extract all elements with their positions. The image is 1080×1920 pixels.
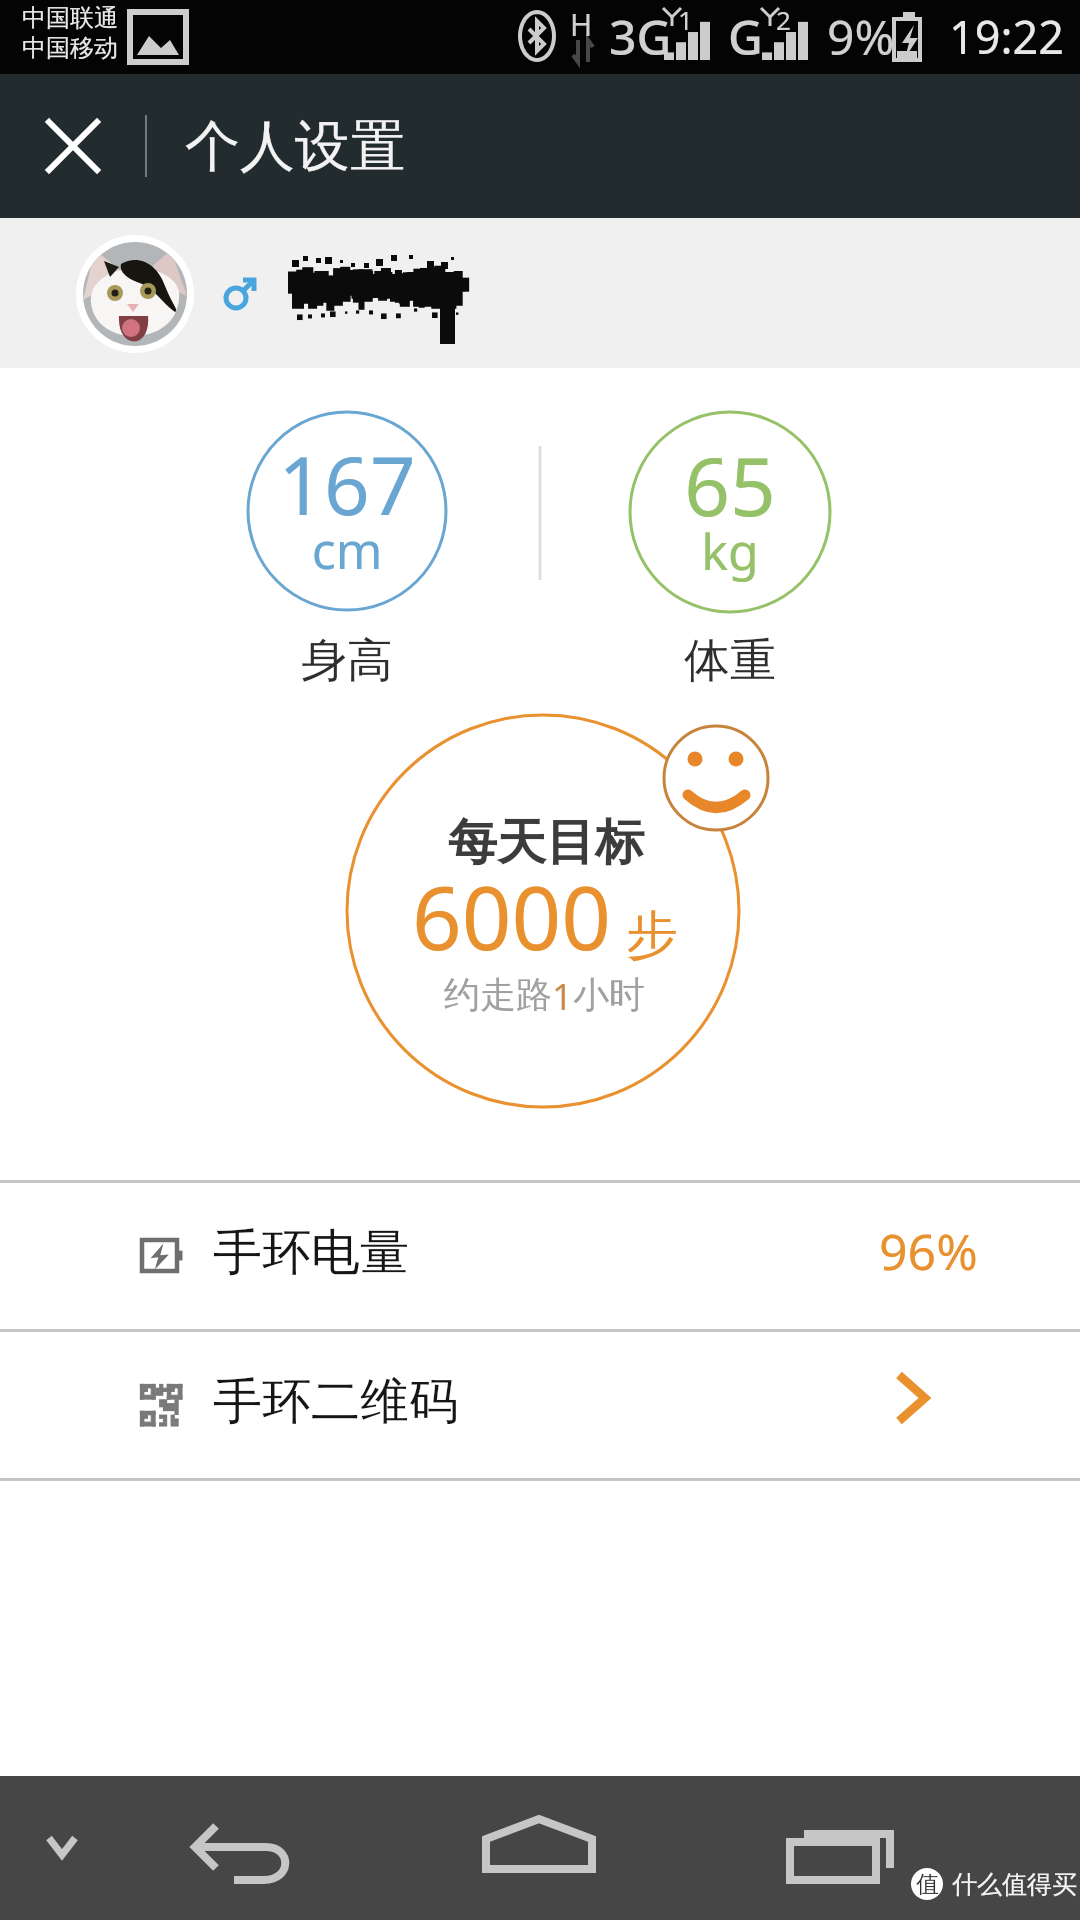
staticText: H: [570, 4, 593, 45]
button[interactable]: 手环电量: [0, 1183, 1080, 1329]
button[interactable]: Edit height: [248, 412, 446, 610]
staticText: 3G: [609, 4, 672, 69]
staticText: 个人设置: [185, 112, 405, 181]
button[interactable]: Edit weight: [630, 412, 830, 612]
staticText: kg: [630, 517, 830, 585]
staticText: 步: [626, 903, 678, 969]
staticText: 手环电量: [213, 1222, 409, 1284]
staticText: 手环二维码: [213, 1371, 458, 1433]
staticText: 值: [916, 1870, 939, 1899]
staticText: 身高: [248, 632, 446, 690]
staticText: 中国联通: [22, 3, 118, 33]
button[interactable]: Recents: [770, 1802, 916, 1898]
staticText: 96%: [879, 1217, 978, 1285]
staticText: 2: [776, 2, 791, 37]
staticText: 小时: [573, 972, 645, 1017]
staticText: 9%: [827, 4, 895, 69]
staticText: 中国移动: [22, 33, 118, 63]
staticText: 6000: [412, 857, 612, 975]
button[interactable]: Edit daily step goal: [347, 715, 739, 1107]
button[interactable]: Close: [26, 99, 120, 193]
staticText: 65: [630, 430, 830, 539]
button[interactable]: [0, 218, 1080, 368]
staticText: 167: [248, 429, 446, 538]
staticText: 1: [678, 2, 693, 37]
button[interactable]: Hide keyboard: [22, 1802, 102, 1894]
staticText: 每天目标: [246, 812, 846, 874]
staticText: cm: [248, 516, 446, 584]
staticText: G: [728, 4, 763, 69]
staticText: 1: [552, 972, 573, 1021]
staticText: 19:22: [949, 6, 1065, 67]
staticText: 体重: [630, 632, 830, 690]
button[interactable]: 手环二维码: [0, 1332, 1080, 1478]
staticText: 约走路: [444, 972, 552, 1017]
button[interactable]: Back: [168, 1798, 314, 1898]
staticText: 什么值得买: [952, 1869, 1077, 1900]
button[interactable]: Home: [462, 1808, 616, 1904]
